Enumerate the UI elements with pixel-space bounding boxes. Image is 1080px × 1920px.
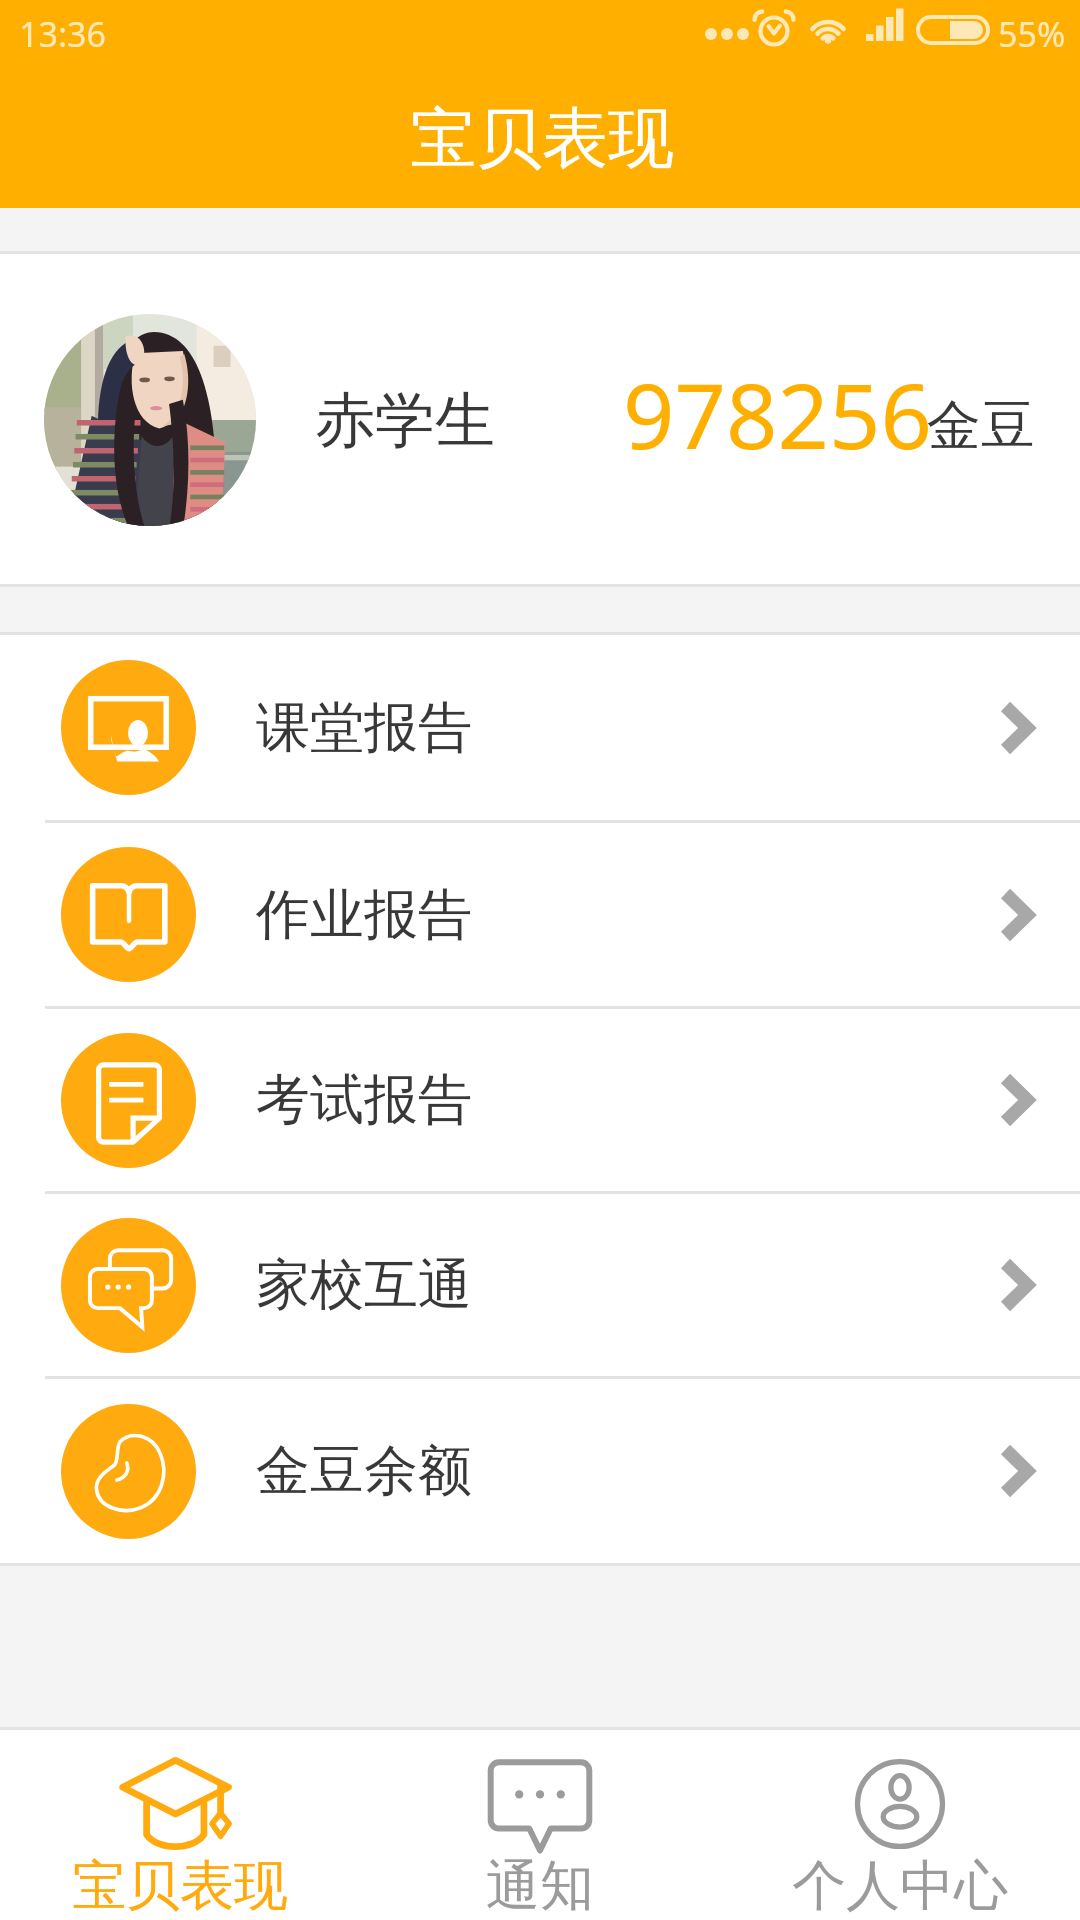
- button[interactable]: Profile photo: [44, 314, 256, 526]
- staticText: 课堂报告: [256, 694, 472, 762]
- button[interactable]: 金豆余额: [0, 1379, 1080, 1563]
- button[interactable]: 个人中心: [720, 1730, 1080, 1920]
- button[interactable]: 考试报告: [0, 1009, 1080, 1191]
- staticText: 978256: [623, 353, 932, 476]
- button[interactable]: 通知: [360, 1730, 720, 1920]
- staticText: 宝贝表现: [72, 1852, 288, 1920]
- button[interactable]: Profile photo: [0, 254, 1080, 584]
- staticText: 家校互通: [256, 1251, 472, 1319]
- staticText: 13:36: [19, 11, 106, 57]
- staticText: 通知: [486, 1852, 594, 1920]
- staticText: 宝贝表现: [410, 97, 674, 180]
- staticText: 金豆余额: [256, 1437, 472, 1505]
- staticText: 金豆: [927, 392, 1035, 460]
- staticText: 赤学生: [315, 383, 495, 459]
- staticText: 考试报告: [256, 1066, 472, 1134]
- button[interactable]: 宝贝表现: [0, 1730, 360, 1920]
- button[interactable]: 家校互通: [0, 1194, 1080, 1376]
- staticText: 55%: [998, 11, 1066, 57]
- button[interactable]: 作业报告: [0, 823, 1080, 1006]
- staticText: 作业报告: [256, 881, 472, 949]
- button[interactable]: 课堂报告: [0, 635, 1080, 820]
- staticText: 个人中心: [792, 1852, 1008, 1920]
